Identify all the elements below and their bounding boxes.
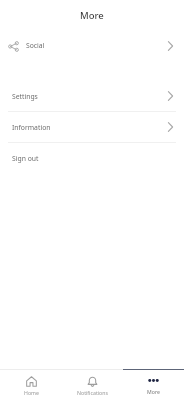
staticText: More: [147, 388, 160, 395]
staticText: Home: [24, 389, 39, 396]
button[interactable]: Information: [0, 112, 184, 142]
button[interactable]: Notifications: [62, 369, 123, 396]
staticText: More: [80, 9, 104, 22]
staticText: Information: [12, 123, 51, 132]
button[interactable]: Sign out: [0, 143, 184, 173]
button[interactable]: Social: [0, 29, 184, 62]
button[interactable]: Home: [0, 369, 62, 396]
button[interactable]: More: [123, 369, 184, 395]
button[interactable]: Settings: [0, 81, 184, 111]
staticText: Notifications: [77, 389, 108, 396]
staticText: Social: [26, 41, 45, 50]
staticText: Sign out: [12, 154, 39, 163]
staticText: Settings: [12, 92, 38, 101]
